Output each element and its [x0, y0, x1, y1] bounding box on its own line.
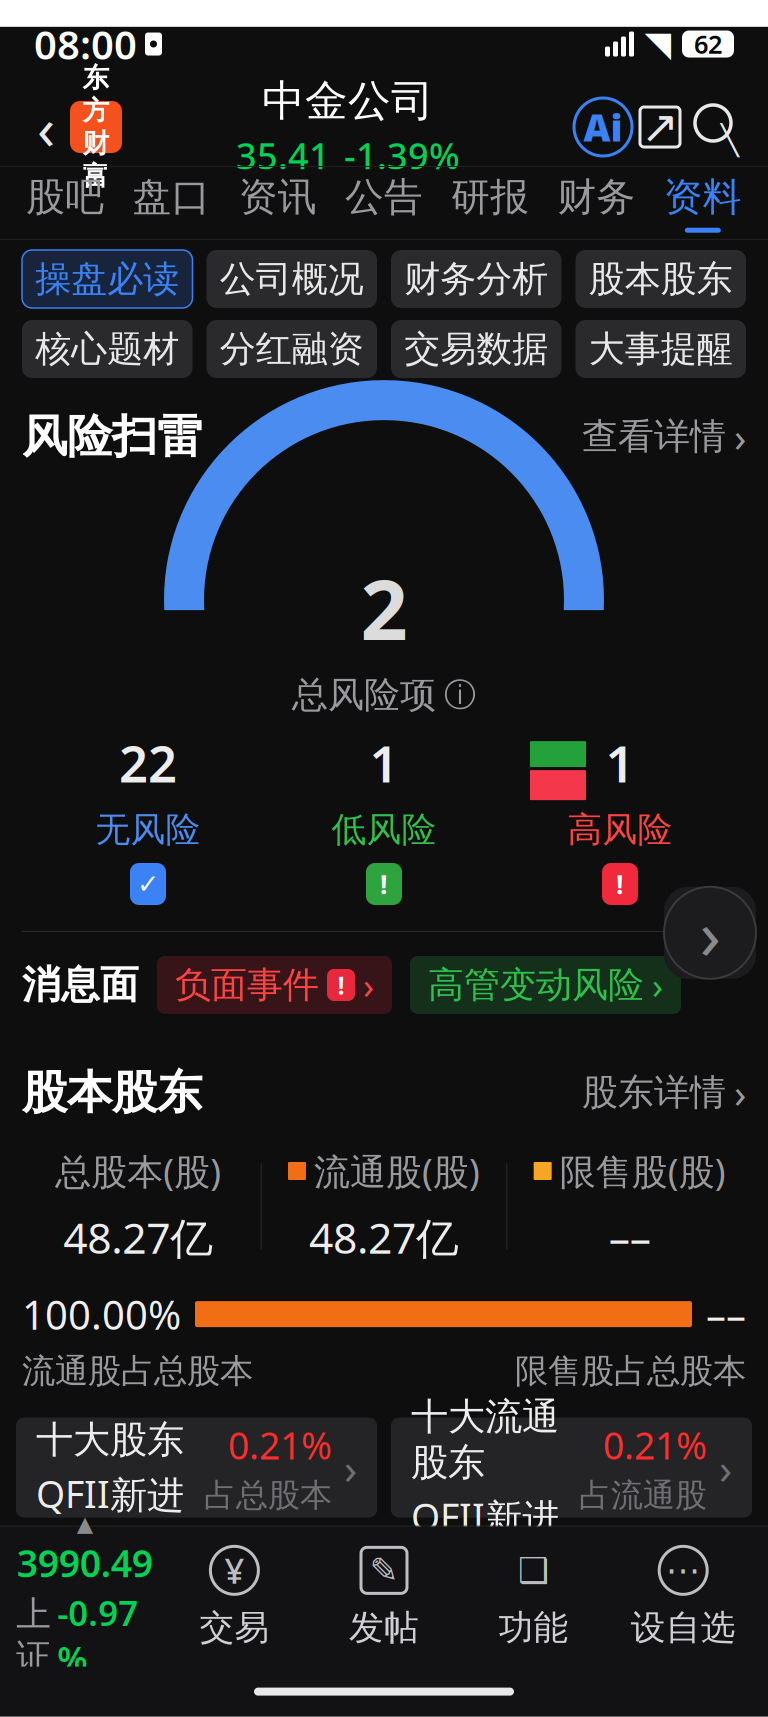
- button[interactable]: 查看详情: [582, 404, 746, 469]
- staticText: 查看详情: [582, 414, 726, 459]
- button[interactable]: 资讯: [225, 165, 331, 241]
- staticText: ›: [344, 1439, 357, 1496]
- button[interactable]: 大事提醒: [575, 320, 746, 378]
- staticText: 高管变动风险: [428, 963, 644, 1007]
- staticText: 低风险: [331, 808, 436, 851]
- staticText: !: [380, 866, 388, 902]
- staticText: 操盘必读: [35, 257, 179, 301]
- button[interactable]: 操盘必读: [22, 250, 192, 308]
- staticText: 总风险项: [292, 673, 436, 717]
- button[interactable]: East Money home: [70, 101, 122, 153]
- staticText: 盘口: [132, 173, 210, 221]
- staticText: 限售股(股): [560, 1147, 726, 1195]
- staticText: 核心题材: [35, 327, 179, 371]
- button[interactable]: Back: [22, 97, 70, 157]
- staticText: 大事提醒: [589, 327, 733, 371]
- staticText: 公司概况: [220, 257, 364, 301]
- button[interactable]: 负面事件: [157, 956, 392, 1014]
- staticText: 总股本(股): [55, 1147, 221, 1195]
- staticText: 无风险: [95, 808, 200, 851]
- button[interactable]: AI assistant: [574, 98, 632, 156]
- staticText: ✎: [369, 1551, 398, 1590]
- button[interactable]: Next: [664, 887, 756, 979]
- staticText: 22: [119, 729, 177, 796]
- button[interactable]: 十大股东: [16, 1418, 377, 1518]
- staticText: ⓘ: [444, 675, 476, 715]
- button[interactable]: 股东详情: [582, 1060, 746, 1125]
- button[interactable]: ⋯: [608, 1544, 758, 1649]
- staticText: !: [616, 866, 624, 902]
- staticText: 公告: [345, 173, 423, 221]
- staticText: 股本股东: [589, 257, 733, 301]
- staticText: Ai: [583, 102, 622, 152]
- staticText: 35.41: [236, 131, 330, 179]
- staticText: ⋯: [666, 1551, 701, 1590]
- staticText: 1: [605, 729, 634, 796]
- button[interactable]: 财务: [543, 165, 650, 241]
- staticText: 研报: [451, 173, 529, 221]
- staticText: 中金公司: [262, 75, 434, 127]
- staticText: 股东详情: [582, 1070, 726, 1115]
- staticText: 08:00: [34, 17, 137, 70]
- staticText: ––: [706, 1288, 746, 1341]
- staticText: 交易: [199, 1606, 269, 1649]
- staticText: -1.39%: [344, 131, 460, 179]
- staticText: 占流通股: [579, 1476, 707, 1515]
- staticText: 消息面: [22, 961, 139, 1009]
- staticText: ◥: [644, 24, 671, 64]
- staticText: 财务: [558, 173, 636, 221]
- staticText: 十大流通股东: [411, 1394, 559, 1486]
- staticText: ›: [734, 1066, 746, 1119]
- staticText: 财务分析: [404, 257, 548, 301]
- staticText: ›: [363, 961, 374, 1009]
- staticText: 资料: [664, 173, 742, 221]
- staticText: 2: [360, 553, 407, 663]
- staticText: 流通股(股): [314, 1147, 480, 1195]
- button[interactable]: 股本股东: [575, 250, 746, 308]
- staticText: ›: [652, 961, 663, 1009]
- button[interactable]: 交易数据: [391, 320, 561, 378]
- staticText: 设自选: [631, 1606, 736, 1649]
- button[interactable]: ✎: [309, 1544, 459, 1649]
- button[interactable]: 高管变动风险: [410, 956, 681, 1014]
- button[interactable]: 财务分析: [391, 250, 561, 308]
- staticText: 1: [369, 729, 398, 796]
- button[interactable]: 资料: [650, 165, 756, 241]
- staticText: ❑: [518, 1551, 549, 1590]
- button[interactable]: ❑: [459, 1544, 608, 1649]
- button[interactable]: 股吧: [12, 165, 118, 241]
- staticText: !: [337, 968, 344, 1002]
- staticText: ‹: [37, 88, 55, 166]
- staticText: 0.21%: [603, 1420, 707, 1470]
- staticText: QFII新进: [36, 1469, 184, 1518]
- button[interactable]: Share: [632, 99, 688, 155]
- button[interactable]: 十大流通股东: [391, 1418, 752, 1518]
- staticText: 48.27亿: [63, 1209, 213, 1266]
- staticText: 股吧: [26, 173, 104, 221]
- staticText: -0.97%: [57, 1589, 138, 1682]
- staticText: 高风险: [567, 808, 672, 851]
- button[interactable]: 分红融资: [206, 320, 377, 378]
- staticText: ›: [719, 1439, 732, 1496]
- staticText: 十大股东: [36, 1417, 184, 1463]
- button[interactable]: 核心题材: [22, 320, 192, 378]
- staticText: 分红融资: [220, 327, 364, 371]
- button[interactable]: ¥: [160, 1544, 309, 1649]
- button[interactable]: 公司概况: [206, 250, 377, 308]
- button[interactable]: 研报: [437, 165, 543, 241]
- staticText: 交易数据: [404, 327, 548, 371]
- staticText: ––: [609, 1209, 651, 1266]
- button[interactable]: ▲: [10, 1512, 160, 1682]
- button[interactable]: 公告: [331, 165, 437, 241]
- staticText: ↗: [641, 101, 679, 153]
- staticText: 限售股占总股本: [515, 1351, 746, 1392]
- button[interactable]: Search: [688, 98, 746, 156]
- staticText: 3990.49: [17, 1538, 153, 1587]
- staticText: 功能: [499, 1606, 569, 1649]
- staticText: 48.27亿: [309, 1209, 459, 1266]
- staticText: 风险扫雷: [22, 409, 202, 464]
- staticText: 占总股本: [204, 1476, 332, 1515]
- button[interactable]: 盘口: [118, 165, 225, 241]
- staticText: ╲: [721, 123, 739, 157]
- staticText: 财富: [82, 127, 109, 192]
